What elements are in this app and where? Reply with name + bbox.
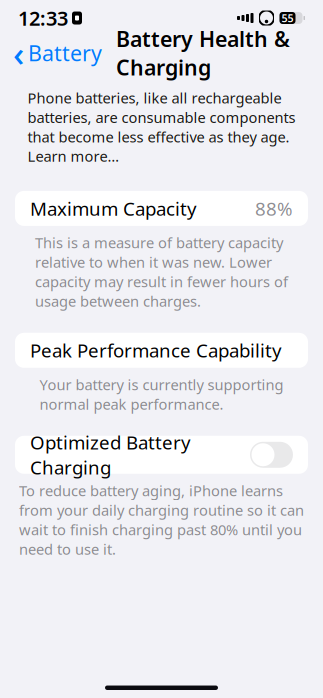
staticText: ‹	[13, 30, 24, 76]
staticText: Battery	[28, 39, 102, 67]
staticText: Optimized Battery Charging	[30, 430, 191, 480]
staticText: To reduce battery aging, iPhone learns f…	[19, 481, 304, 559]
button[interactable]: Optimized Battery Charging	[15, 436, 308, 474]
staticText: Battery Health & Charging	[116, 25, 290, 81]
staticText: Your battery is currently supporting nor…	[39, 375, 283, 414]
staticText: Phone batteries, like all rechargeable b…	[27, 88, 295, 166]
button[interactable]: Peak Performance Capability	[15, 333, 308, 368]
staticText: 12:33	[18, 5, 68, 31]
staticText: This is a measure of battery capacity re…	[35, 233, 288, 311]
staticText: Maximum Capacity	[30, 196, 197, 221]
button[interactable]: ‹	[13, 33, 106, 73]
button[interactable]: Maximum Capacity	[15, 191, 308, 226]
staticText: 55	[281, 11, 293, 25]
staticText: Peak Performance Capability	[30, 338, 282, 363]
staticText: 88%	[255, 196, 293, 221]
